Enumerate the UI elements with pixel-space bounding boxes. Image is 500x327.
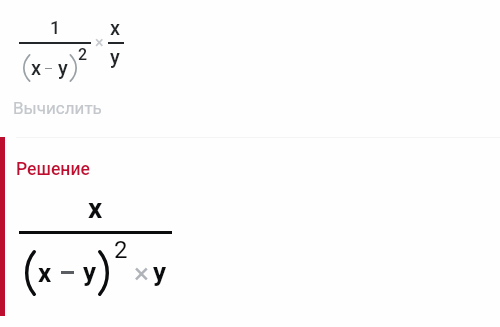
staticText: x bbox=[31, 56, 42, 79]
staticText: y bbox=[110, 45, 120, 68]
staticText: x bbox=[88, 192, 103, 225]
staticText: × bbox=[95, 33, 104, 52]
staticText: x bbox=[38, 258, 52, 288]
button[interactable]: Entered expression bbox=[0, 0, 140, 88]
staticText: 1 bbox=[50, 17, 61, 38]
staticText: y bbox=[58, 56, 68, 79]
staticText: y bbox=[83, 257, 97, 287]
staticText: × bbox=[134, 257, 149, 290]
staticText: Решение bbox=[16, 159, 90, 180]
staticText: x bbox=[110, 16, 121, 39]
staticText: 2 bbox=[78, 45, 88, 64]
staticText: Вычислить bbox=[13, 98, 102, 118]
staticText: y bbox=[153, 257, 167, 287]
button[interactable]: Вычислить bbox=[6, 92, 106, 122]
staticText: 2 bbox=[114, 236, 128, 264]
button[interactable]: Решение bbox=[0, 137, 500, 316]
